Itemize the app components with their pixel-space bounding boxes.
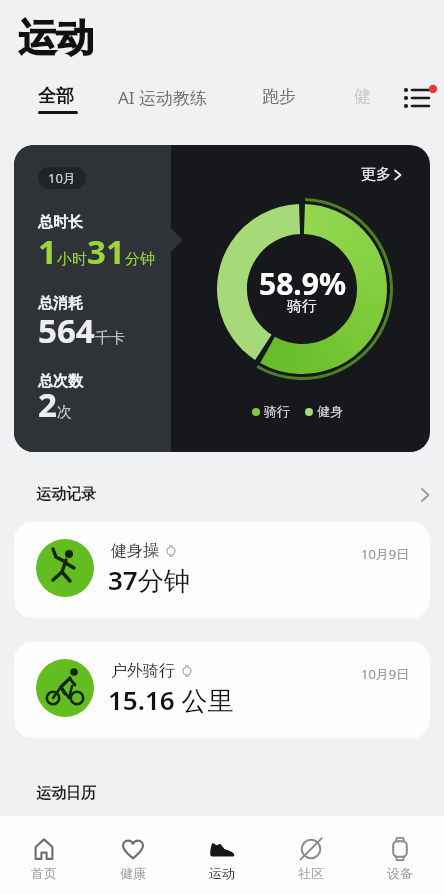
staticText: 运动日历 bbox=[36, 784, 96, 803]
staticText: 社区 bbox=[298, 865, 324, 881]
button[interactable]: AI 运动教练 bbox=[0, 0, 90, 23]
button[interactable]: 10月 bbox=[14, 145, 430, 452]
staticText: 设备 bbox=[387, 865, 413, 881]
staticText: 总消耗 bbox=[38, 294, 83, 313]
staticText: 次 bbox=[57, 403, 72, 422]
staticText: 千卡 bbox=[95, 329, 125, 348]
button[interactable]: 健身操 bbox=[14, 522, 430, 618]
staticText: 健 bbox=[354, 86, 371, 107]
staticText: 分钟 bbox=[125, 250, 155, 269]
staticText: 31 bbox=[87, 229, 125, 274]
staticText: 运动记录 bbox=[36, 485, 96, 504]
staticText: 总时长 bbox=[38, 213, 83, 232]
button[interactable]: 跑步 bbox=[0, 0, 34, 21]
staticText: 首页 bbox=[31, 865, 57, 881]
staticText: 健身 bbox=[317, 403, 343, 419]
button[interactable]: 更多 bbox=[361, 165, 405, 184]
staticText: 10月 bbox=[48, 169, 76, 187]
staticText: 运动 bbox=[209, 865, 235, 881]
button[interactable]: 社区 bbox=[266, 816, 355, 894]
button[interactable]: 户外骑行 bbox=[14, 642, 430, 738]
staticText: 小时 bbox=[57, 250, 87, 269]
staticText: 更多 bbox=[361, 165, 391, 184]
staticText: 户外骑行 bbox=[111, 661, 175, 681]
staticText: 运动 bbox=[18, 14, 94, 62]
staticText: 健康 bbox=[120, 865, 146, 881]
button[interactable]: 运动 bbox=[177, 816, 266, 894]
staticText: 骑行 bbox=[264, 403, 290, 419]
button[interactable]: 设备 bbox=[355, 816, 444, 894]
button[interactable] bbox=[398, 78, 438, 108]
staticText: 58.9% bbox=[259, 263, 346, 304]
staticText: 健身操 bbox=[111, 541, 159, 561]
button[interactable]: 全部 bbox=[0, 0, 36, 23]
staticText: 10月9日 bbox=[361, 545, 410, 563]
staticText: 564 bbox=[38, 308, 95, 353]
staticText: 骑行 bbox=[287, 297, 317, 316]
button[interactable]: 首页 bbox=[0, 816, 88, 894]
staticText: 15.16 公里 bbox=[108, 682, 234, 718]
staticText: 37分钟 bbox=[108, 562, 190, 598]
staticText: 1 bbox=[38, 229, 57, 274]
button[interactable]: 健康 bbox=[88, 816, 177, 894]
staticText: 总次数 bbox=[38, 372, 83, 391]
staticText: 10月9日 bbox=[361, 665, 410, 683]
staticText: 2 bbox=[38, 382, 57, 427]
